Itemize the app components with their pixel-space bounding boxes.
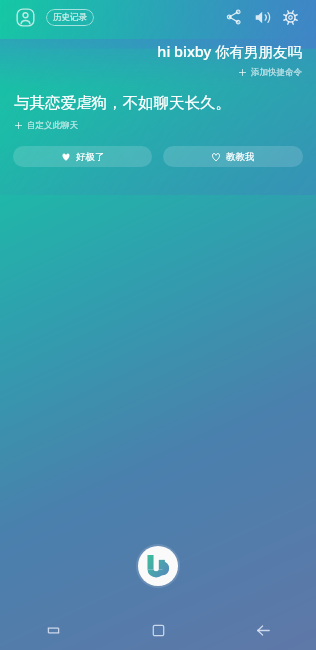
button[interactable]: Recent apps	[0, 610, 106, 650]
button[interactable]: 添加快捷命令	[238, 66, 302, 79]
button[interactable]: Home	[106, 610, 211, 650]
button[interactable]: Sound	[248, 3, 276, 31]
button[interactable]: Profile	[12, 4, 38, 30]
staticText: 历史记录	[53, 12, 87, 23]
staticText: 与其恋爱虐狗，不如聊天长久。	[14, 93, 231, 113]
button[interactable]: Settings	[276, 3, 304, 31]
staticText: 添加快捷命令	[251, 67, 302, 78]
button[interactable]: 历史记录	[46, 9, 94, 26]
staticText: 教教我	[226, 151, 255, 163]
staticText: 好极了	[76, 151, 105, 163]
button[interactable]: 自定义此聊天	[14, 119, 78, 132]
button[interactable]: 教教我	[163, 146, 303, 167]
staticText: 自定义此聊天	[27, 120, 78, 131]
button[interactable]: Bixby listening	[136, 544, 180, 588]
staticText: hi bixby 你有男朋友吗	[157, 41, 302, 61]
button[interactable]: Back	[211, 610, 316, 650]
button[interactable]: 好极了	[13, 146, 152, 167]
button[interactable]: Share	[220, 3, 248, 31]
